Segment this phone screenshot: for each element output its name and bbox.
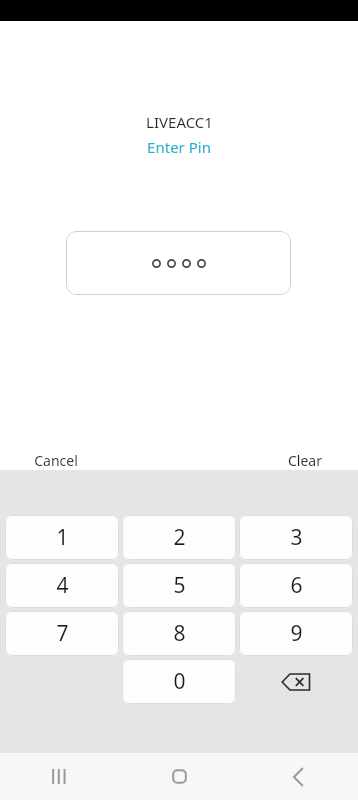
button[interactable]: 3: [239, 515, 353, 560]
staticText: 2: [173, 523, 186, 552]
button[interactable]: Backspace: [239, 659, 353, 704]
button[interactable]: 0: [122, 659, 236, 704]
staticText: 5: [173, 571, 186, 600]
staticText: LIVEACC1: [146, 112, 213, 132]
staticText: 3: [290, 523, 303, 552]
button[interactable]: Clear: [276, 449, 334, 470]
button[interactable]: 2: [122, 515, 236, 560]
button[interactable]: 9: [239, 611, 353, 656]
staticText: 9: [290, 619, 303, 648]
button[interactable]: Home: [120, 753, 239, 800]
button[interactable]: 7: [5, 611, 119, 656]
staticText: Clear: [288, 451, 322, 468]
button[interactable]: 4: [5, 563, 119, 608]
button[interactable]: Back: [239, 753, 358, 800]
button[interactable]: 5: [122, 563, 236, 608]
button[interactable]: 8: [122, 611, 236, 656]
button[interactable]: Cancel: [22, 449, 90, 470]
staticText: Enter Pin: [147, 137, 211, 157]
staticText: 6: [290, 571, 303, 600]
button[interactable]: 1: [5, 515, 119, 560]
staticText: 4: [56, 571, 69, 600]
button[interactable]: 6: [239, 563, 353, 608]
staticText: 8: [173, 619, 186, 648]
button[interactable]: PIN entry field: [66, 231, 291, 295]
staticText: 7: [56, 619, 69, 648]
button[interactable]: Recent apps: [0, 753, 120, 800]
staticText: 0: [173, 667, 186, 696]
staticText: Cancel: [34, 451, 78, 468]
staticText: 1: [56, 523, 69, 552]
